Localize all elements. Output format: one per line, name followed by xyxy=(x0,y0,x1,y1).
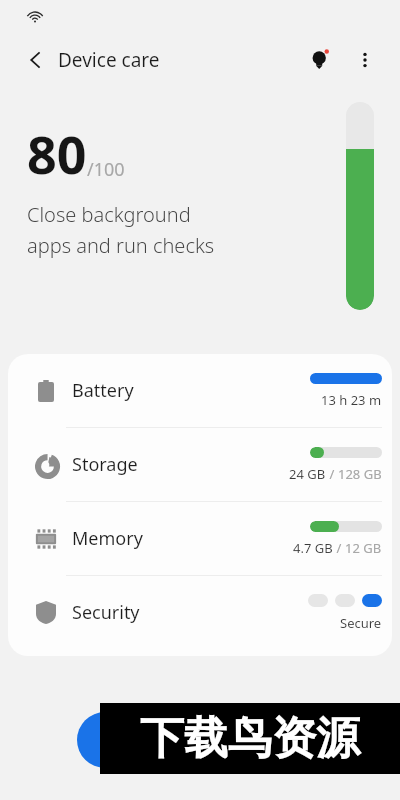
staticText: Close background xyxy=(27,201,191,228)
staticText: 下载鸟资源 xyxy=(140,711,360,766)
staticText: Storage xyxy=(72,452,138,477)
staticText: 24 GB xyxy=(289,465,326,483)
staticText: Device care xyxy=(58,47,160,73)
button[interactable]: Optimise now xyxy=(77,712,323,768)
button[interactable]: Tips xyxy=(298,38,342,82)
button[interactable]: Back xyxy=(14,38,58,82)
staticText: 80 xyxy=(27,118,87,189)
button[interactable]: Storage xyxy=(8,428,392,501)
button[interactable]: Security xyxy=(8,576,392,649)
staticText: Secure xyxy=(340,614,382,632)
staticText: Optimise now xyxy=(145,729,256,752)
staticText: Memory xyxy=(72,526,143,551)
button[interactable]: Battery xyxy=(8,354,392,427)
button[interactable]: Memory xyxy=(8,502,392,575)
staticText: 12 GB xyxy=(345,539,382,557)
staticText: 13 h 23 m xyxy=(321,391,382,409)
staticText: Battery xyxy=(72,378,134,403)
staticText: 4.7 GB xyxy=(293,539,333,557)
staticText: Security xyxy=(72,600,140,625)
button[interactable]: More options xyxy=(343,38,387,82)
staticText: / xyxy=(326,465,338,483)
staticText: 128 GB xyxy=(338,465,382,483)
staticText: /100 xyxy=(87,157,125,182)
staticText: / xyxy=(333,539,345,557)
staticText: apps and run checks xyxy=(27,232,215,259)
